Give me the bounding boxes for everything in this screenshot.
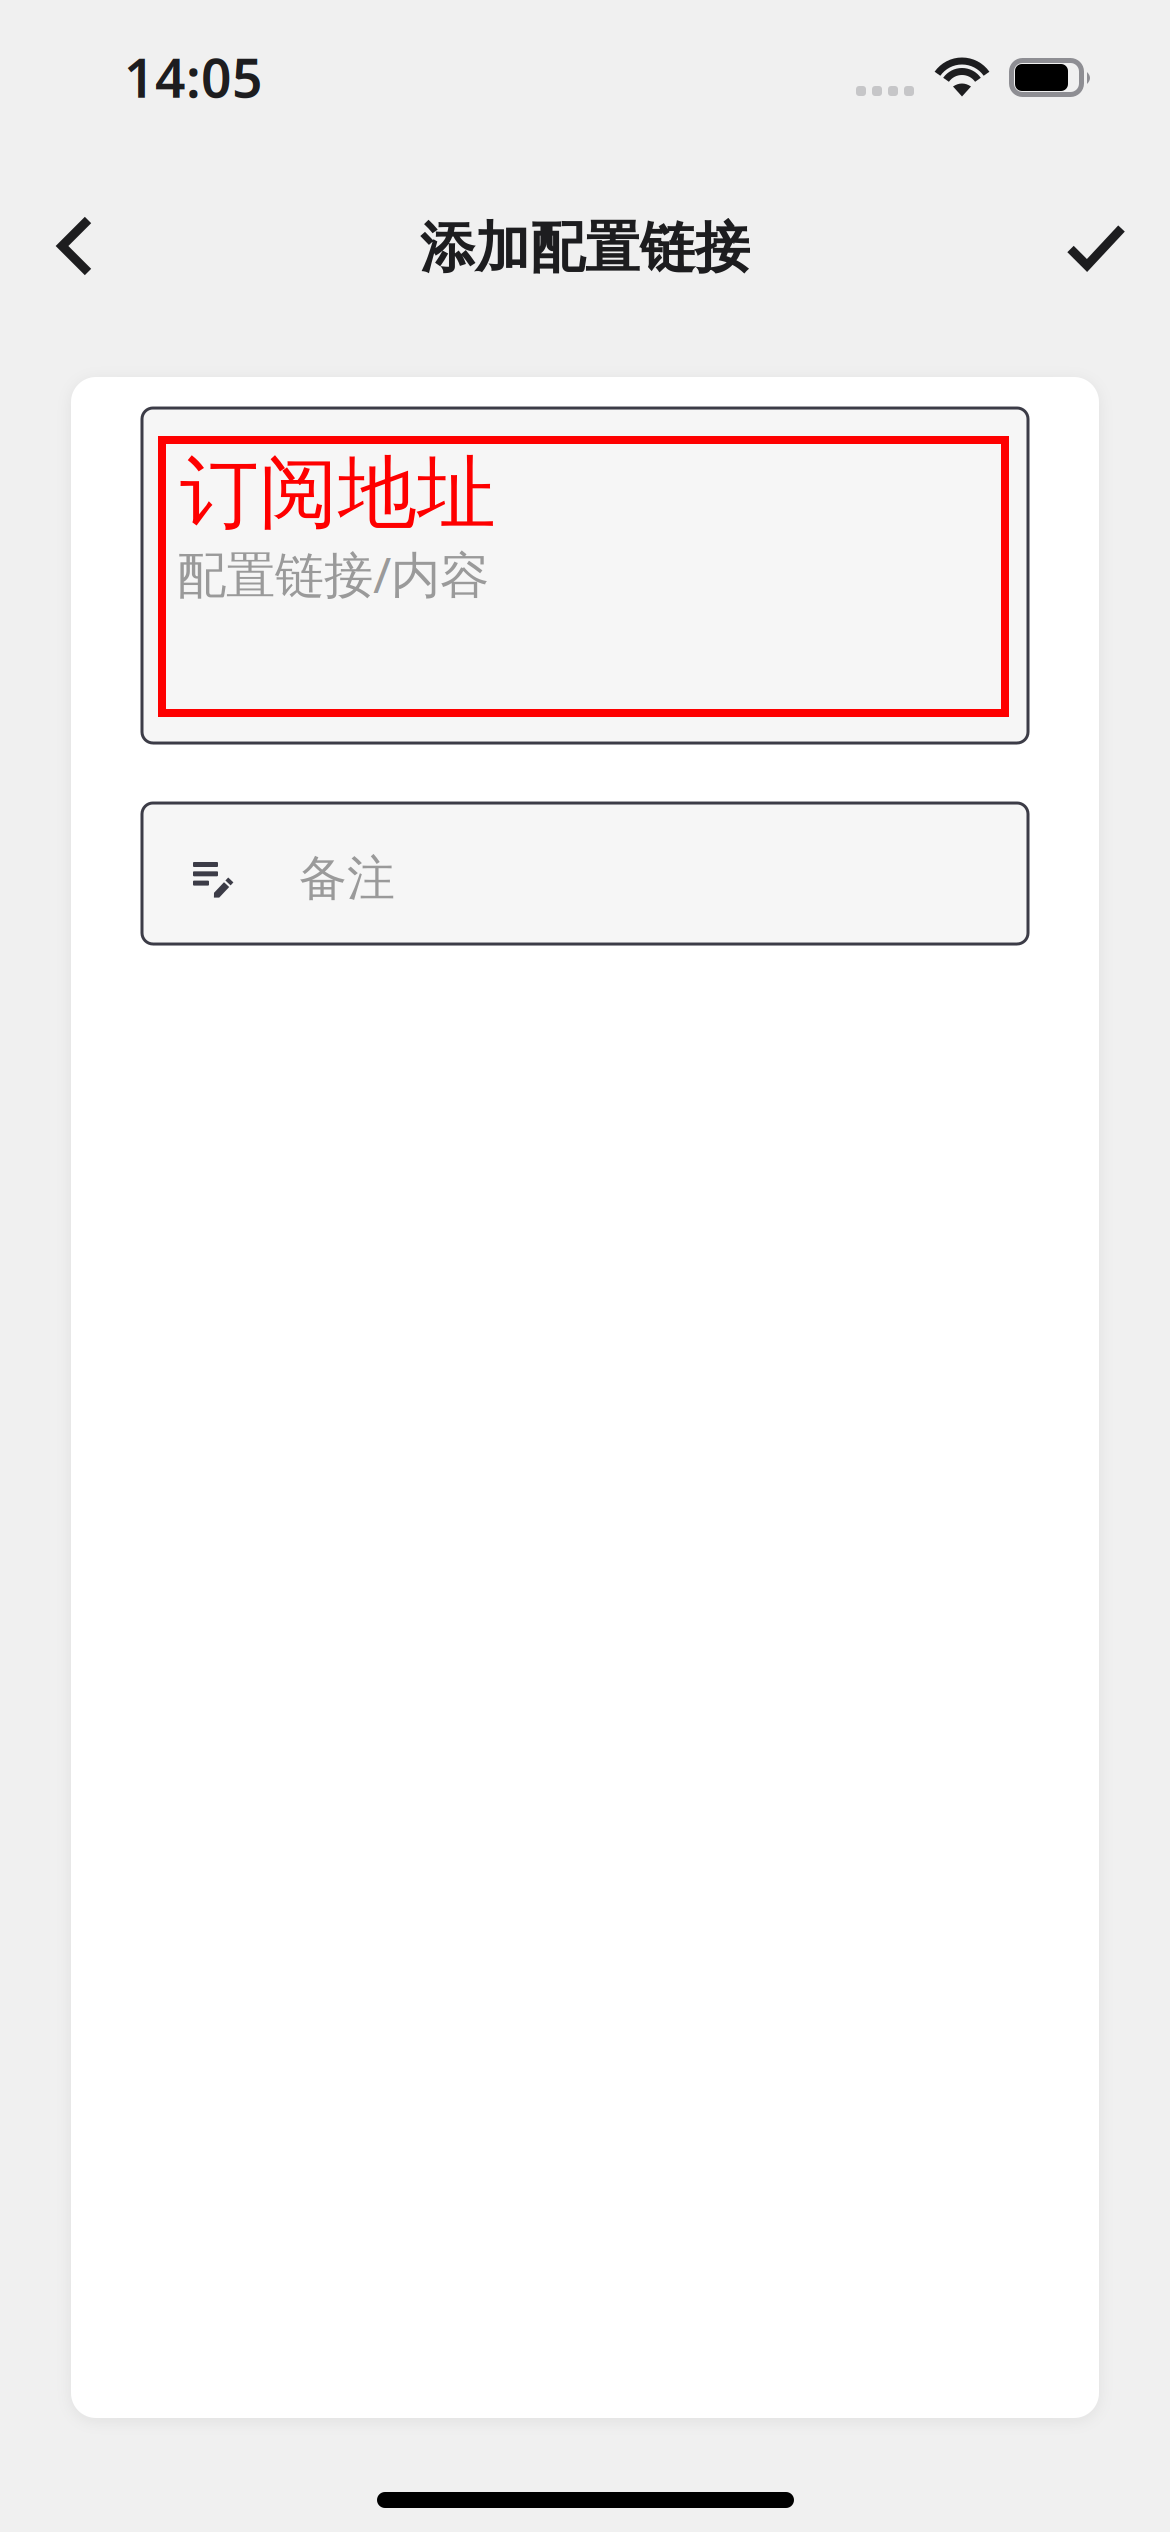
staticText: 配置链接/内容 (177, 541, 489, 606)
button[interactable]: 备注 (142, 803, 1028, 944)
staticText: 添加配置链接 (420, 214, 750, 281)
button[interactable]: Back (15, 186, 135, 306)
staticText: 14:05 (124, 42, 263, 112)
button[interactable]: Done (1036, 187, 1156, 307)
staticText: 备注 (299, 849, 395, 908)
button[interactable]: 订阅地址 (142, 408, 1028, 743)
staticText: 订阅地址 (180, 445, 496, 542)
